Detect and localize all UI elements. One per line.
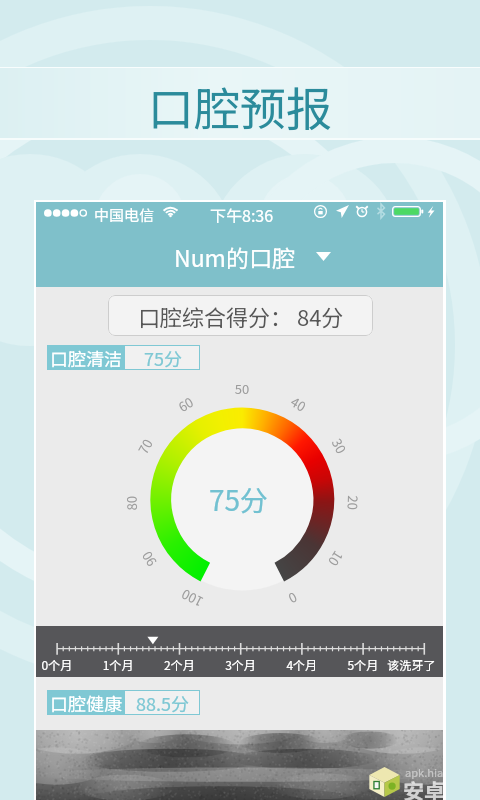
staticText: 口腔清洁 <box>50 345 122 370</box>
staticText: 下午8:36 <box>210 203 274 226</box>
staticText: 口腔预报 <box>148 73 332 140</box>
other: Rotation lock <box>314 205 327 218</box>
other: Location <box>336 205 349 218</box>
staticText: 88.5分 <box>136 690 189 715</box>
other: Alarm <box>356 205 368 217</box>
button[interactable]: 口腔健康 <box>47 690 200 715</box>
button[interactable]: 口腔综合得分： 84分 <box>108 295 373 336</box>
other: Battery <box>392 206 424 217</box>
staticText: 75分 <box>144 345 182 370</box>
staticText: apk.hiapk.com <box>405 764 443 780</box>
staticText: 安卓市场 <box>403 775 443 800</box>
staticText: 口腔综合得分： 84分 <box>138 300 344 332</box>
staticText: 中国电信 <box>94 204 155 226</box>
other: Bluetooth <box>376 204 386 218</box>
button[interactable]: 口腔清洁 <box>47 345 200 370</box>
staticText: Num的口腔 <box>174 240 295 273</box>
button[interactable]: Num的口腔 <box>174 239 331 273</box>
staticText: 口腔健康 <box>50 690 122 715</box>
